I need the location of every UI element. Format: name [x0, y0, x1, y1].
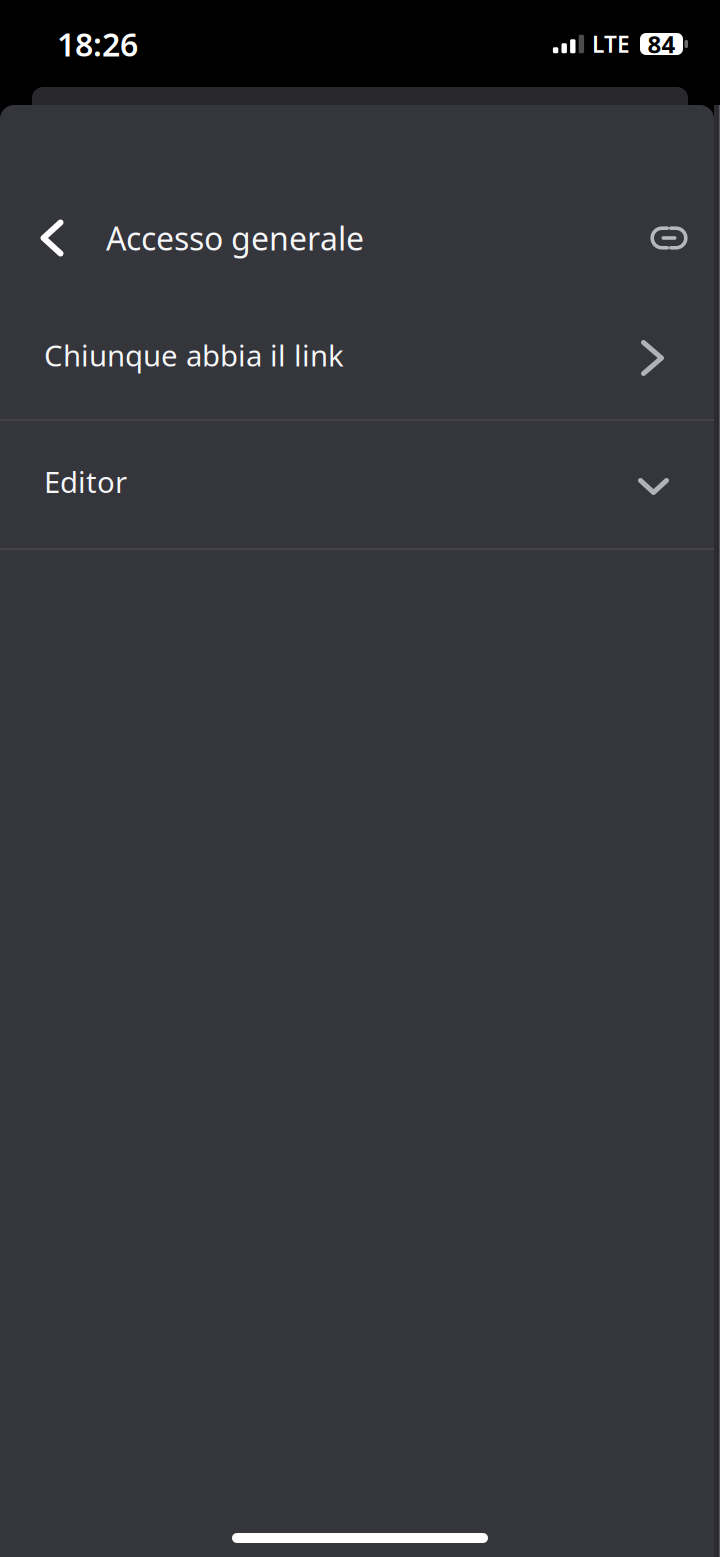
button[interactable]: Copia link — [641, 185, 697, 291]
button[interactable]: Indietro — [24, 185, 80, 291]
staticText: 84 — [647, 28, 675, 60]
staticText: LTE — [592, 29, 630, 59]
button[interactable]: Editor — [0, 421, 714, 548]
staticText: Editor — [44, 462, 127, 501]
staticText: 18:26 — [57, 23, 138, 65]
button[interactable]: Chiunque abbia il link — [0, 291, 714, 419]
staticText: Accesso generale — [106, 217, 364, 259]
staticText: Chiunque abbia il link — [44, 335, 344, 374]
